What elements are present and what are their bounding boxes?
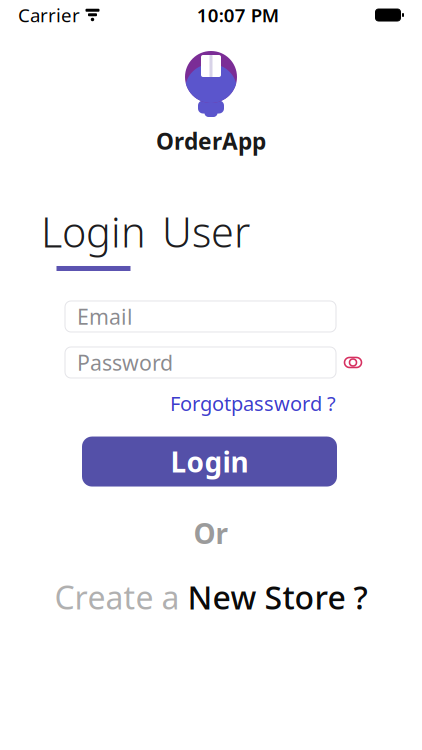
staticText: 10:07 PM	[197, 3, 279, 27]
staticText: User	[162, 204, 250, 259]
staticText: OrderApp	[156, 126, 266, 156]
button[interactable]: Forgotpassword ?	[170, 390, 336, 417]
staticText: Password	[77, 348, 173, 377]
staticText: Create a	[54, 576, 179, 618]
staticText: Carrier	[18, 3, 80, 27]
button[interactable]: Create a	[54, 576, 367, 618]
staticText: Email	[77, 302, 133, 331]
button[interactable]: Login	[41, 204, 146, 259]
staticText: Or	[193, 514, 228, 552]
staticText: Login	[41, 204, 146, 259]
staticText: New Store ?	[187, 576, 367, 618]
staticText: Forgotpassword ?	[170, 390, 336, 417]
button[interactable]: Login	[82, 436, 337, 486]
button[interactable]: User	[162, 204, 250, 259]
button[interactable]: Show password	[336, 347, 370, 378]
staticText: Login	[170, 443, 248, 480]
